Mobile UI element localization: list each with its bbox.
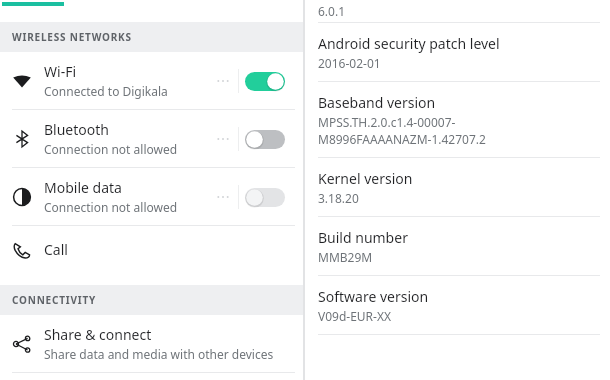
staticText: Connected to Digikala [44, 83, 168, 99]
staticText: Call [44, 240, 68, 259]
button[interactable]: Baseband version [305, 82, 610, 157]
button[interactable]: Mobile data [0, 168, 303, 225]
staticText: Baseband version [318, 93, 436, 112]
button[interactable]: Kernel version [305, 158, 610, 216]
staticText: V09d-EUR-XX [318, 308, 392, 324]
staticText: MPSS.TH.2.0.c1.4-00007- [318, 114, 456, 130]
button[interactable]: Android security patch level [305, 23, 610, 81]
staticText: WIRELESS NETWORKS [12, 30, 132, 44]
button[interactable]: More options [214, 182, 232, 212]
staticText: 2016-02-01 [318, 55, 381, 71]
staticText: Share & connect [44, 325, 152, 344]
staticText: MMB29M [318, 249, 373, 265]
staticText: Software version [318, 287, 429, 306]
staticText: Kernel version [318, 169, 413, 188]
staticText: Bluetooth [44, 120, 109, 139]
button[interactable]: Bluetooth [0, 110, 303, 167]
button[interactable]: Build number [305, 217, 610, 275]
staticText: Connection not allowed [44, 141, 178, 157]
other: Bluetooth [12, 129, 32, 149]
button[interactable]: Call [0, 226, 303, 273]
staticText: Connection not allowed [44, 199, 178, 215]
button[interactable]: Share and connect [0, 315, 303, 372]
staticText: 6.0.1 [318, 3, 346, 19]
staticText: 3.18.20 [318, 190, 359, 206]
staticText: Android security patch level [318, 34, 500, 53]
other: Wi-Fi [12, 71, 32, 91]
button[interactable]: Toggle [245, 124, 285, 154]
staticText: M8996FAAAANAZM-1.42707.2 [318, 131, 486, 147]
button[interactable]: Wi-Fi [0, 52, 303, 109]
staticText: Mobile data [44, 178, 122, 197]
other: Share and connect [12, 334, 32, 354]
other: Mobile data [12, 187, 32, 207]
staticText: CONNECTIVITY [12, 293, 97, 307]
staticText: Share data and media with other devices [44, 346, 274, 362]
button[interactable]: Toggle [245, 66, 285, 96]
other: Call [12, 240, 32, 260]
button[interactable]: Toggle [245, 182, 285, 212]
button[interactable]: Software version [305, 276, 610, 334]
staticText: Build number [318, 228, 408, 247]
button[interactable]: More options [214, 66, 232, 96]
button[interactable]: More options [214, 124, 232, 154]
staticText: Wi-Fi [44, 62, 77, 81]
